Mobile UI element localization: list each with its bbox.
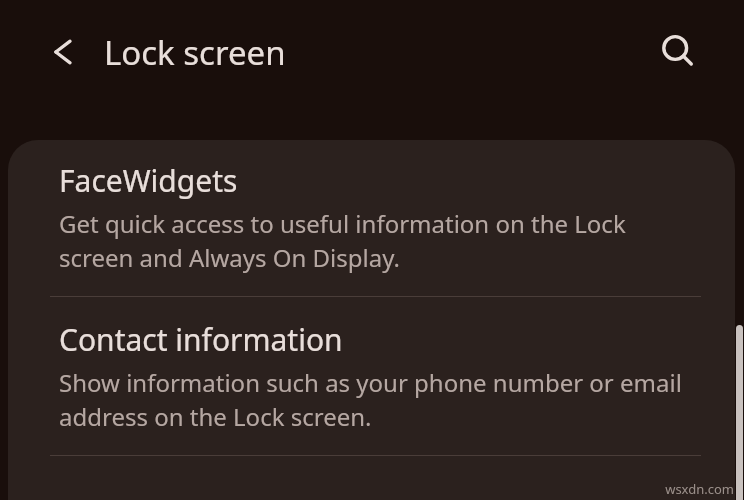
staticText: Get quick access to useful information o…	[59, 207, 695, 274]
button[interactable]: Contact information	[8, 297, 735, 456]
staticText: Contact information	[59, 319, 343, 360]
button[interactable]: FaceWidgets	[8, 140, 735, 297]
staticText: wsxdn.com	[665, 480, 734, 498]
staticText: Lock screen	[104, 30, 286, 75]
button[interactable]: Back	[42, 28, 90, 76]
staticText: FaceWidgets	[59, 160, 238, 201]
staticText: Show information such as your phone numb…	[59, 366, 695, 433]
button[interactable]: Search	[654, 28, 702, 76]
